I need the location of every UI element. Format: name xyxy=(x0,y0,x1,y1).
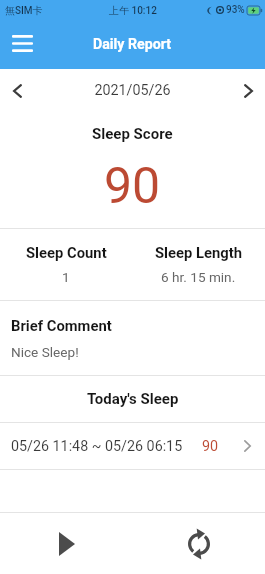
staticText: 05/26 11:48 ~ 05/26 06:15 xyxy=(11,438,183,455)
button[interactable]: 05/26 11:48 ~ 05/26 06:15 xyxy=(0,423,265,469)
staticText: 1 xyxy=(62,269,70,285)
staticText: 90 xyxy=(202,438,219,455)
button[interactable]: Sleep Length xyxy=(132,229,265,300)
staticText: Nice Sleep! xyxy=(11,344,79,360)
button[interactable]: Sleep Count xyxy=(0,229,132,300)
button[interactable]: Previous day xyxy=(0,69,34,112)
staticText: Daily Report xyxy=(93,36,172,53)
staticText: Brief Comment xyxy=(11,317,112,334)
staticText: 90 xyxy=(104,157,161,216)
staticText: 2021/05/26 xyxy=(34,82,231,99)
staticText: Sleep Count xyxy=(26,244,107,261)
button[interactable]: Play xyxy=(0,513,132,574)
staticText: Sleep Score xyxy=(92,125,173,143)
staticText: Today's Sleep xyxy=(87,390,179,408)
staticText: 93% xyxy=(226,4,245,16)
staticText: 無SIM卡 xyxy=(5,4,43,17)
staticText: 6 hr. 15 min. xyxy=(161,269,236,285)
button[interactable]: Next day xyxy=(231,69,265,112)
staticText: Sleep Length xyxy=(155,244,243,261)
button[interactable]: Menu xyxy=(0,23,44,67)
staticText: 上午 10:12 xyxy=(109,4,157,17)
button[interactable]: Sync xyxy=(132,513,265,574)
